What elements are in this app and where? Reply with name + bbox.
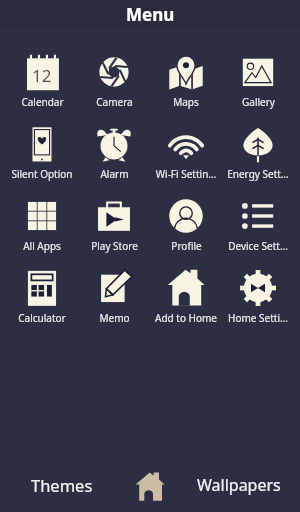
staticText: Silent Option	[11, 167, 73, 181]
staticText: Calculator	[18, 311, 66, 325]
staticText: Play Store	[91, 239, 138, 253]
button[interactable]: Memo	[78, 269, 150, 325]
staticText: Themes	[31, 474, 93, 496]
button[interactable]: Themes	[0, 462, 123, 512]
button[interactable]: 12	[6, 53, 78, 109]
button[interactable]: Profile	[150, 197, 222, 253]
staticText: Gallery	[242, 95, 275, 109]
button[interactable]: Play Store	[78, 197, 150, 253]
staticText: Profile	[171, 239, 202, 253]
staticText: Alarm	[100, 167, 129, 181]
button[interactable]: Wallpapers	[177, 462, 300, 512]
staticText: Memo	[99, 311, 130, 325]
button[interactable]: Energy Settings	[222, 125, 294, 181]
staticText: Wallpapers	[197, 474, 281, 496]
staticText: Add to Home	[155, 311, 217, 325]
staticText: Menu	[126, 3, 175, 26]
staticText: Energy Settings	[227, 167, 289, 181]
staticText: Calendar	[21, 95, 64, 109]
button[interactable]: Camera	[78, 53, 150, 109]
staticText: Wi-Fi Settings	[155, 167, 217, 181]
button[interactable]: Gallery	[222, 53, 294, 109]
button[interactable]: Add to Home	[150, 269, 222, 325]
staticText: Home Settings	[227, 311, 289, 325]
staticText: Maps	[173, 95, 199, 109]
button[interactable]: Home	[123, 462, 177, 512]
staticText: Device Settings	[227, 239, 289, 253]
button[interactable]: Alarm	[78, 125, 150, 181]
staticText: All Apps	[23, 239, 61, 253]
button[interactable]: Maps	[150, 53, 222, 109]
button[interactable]: Home Settings	[222, 269, 294, 325]
button[interactable]: Wi-Fi Settings	[150, 125, 222, 181]
button[interactable]: Device Settings	[222, 197, 294, 253]
staticText: Camera	[96, 95, 133, 109]
staticText: 12	[32, 64, 52, 87]
button[interactable]: All Apps	[6, 197, 78, 253]
button[interactable]: Silent Option	[6, 125, 78, 181]
button[interactable]: Calculator	[6, 269, 78, 325]
